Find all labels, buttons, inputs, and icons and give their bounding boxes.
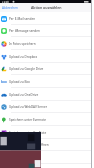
staticText: Per E-Mail senden xyxy=(9,17,36,21)
staticText: Aktion auswählen xyxy=(31,5,62,10)
staticText: Upload zu Dropbox xyxy=(9,55,38,59)
staticText: Upload zu WebDAV Server xyxy=(9,105,47,109)
staticText: In Fotos speichern xyxy=(9,42,36,46)
button[interactable]: Dokument in iBooks öffnen xyxy=(0,139,91,151)
staticText: Speichern unter OneNote xyxy=(9,131,47,135)
button[interactable]: box xyxy=(0,75,91,88)
button[interactable]: Upload zu Dropbox xyxy=(0,50,91,63)
button[interactable]: Per iMessage senden xyxy=(0,25,91,37)
staticText: Per iMessage senden xyxy=(9,29,40,33)
staticText: Speichern unter Evernote xyxy=(9,118,47,122)
staticText: Upload zu Google Drive xyxy=(9,67,44,71)
button[interactable]: Upload zu Google Drive xyxy=(0,63,91,75)
button[interactable]: Upload zu WebDAV Server xyxy=(0,101,91,113)
button[interactable]: Per E-Mail senden xyxy=(0,12,91,25)
staticText: Dokument in iBooks öffnen xyxy=(9,143,49,147)
button[interactable]: Speichern unter OneNote xyxy=(0,126,91,139)
button[interactable]: Abbrechen xyxy=(2,6,18,10)
button[interactable]: In Fotos speichern xyxy=(0,37,91,50)
staticText: box xyxy=(1,80,7,84)
button[interactable]: Drucken xyxy=(0,151,91,164)
button[interactable]: Speichern unter Evernote xyxy=(0,113,91,126)
button[interactable]: Upload zu OneDrive xyxy=(0,88,91,101)
staticText: Upload zu OneDrive xyxy=(9,93,39,97)
staticText: Upload zu Box xyxy=(9,80,30,84)
